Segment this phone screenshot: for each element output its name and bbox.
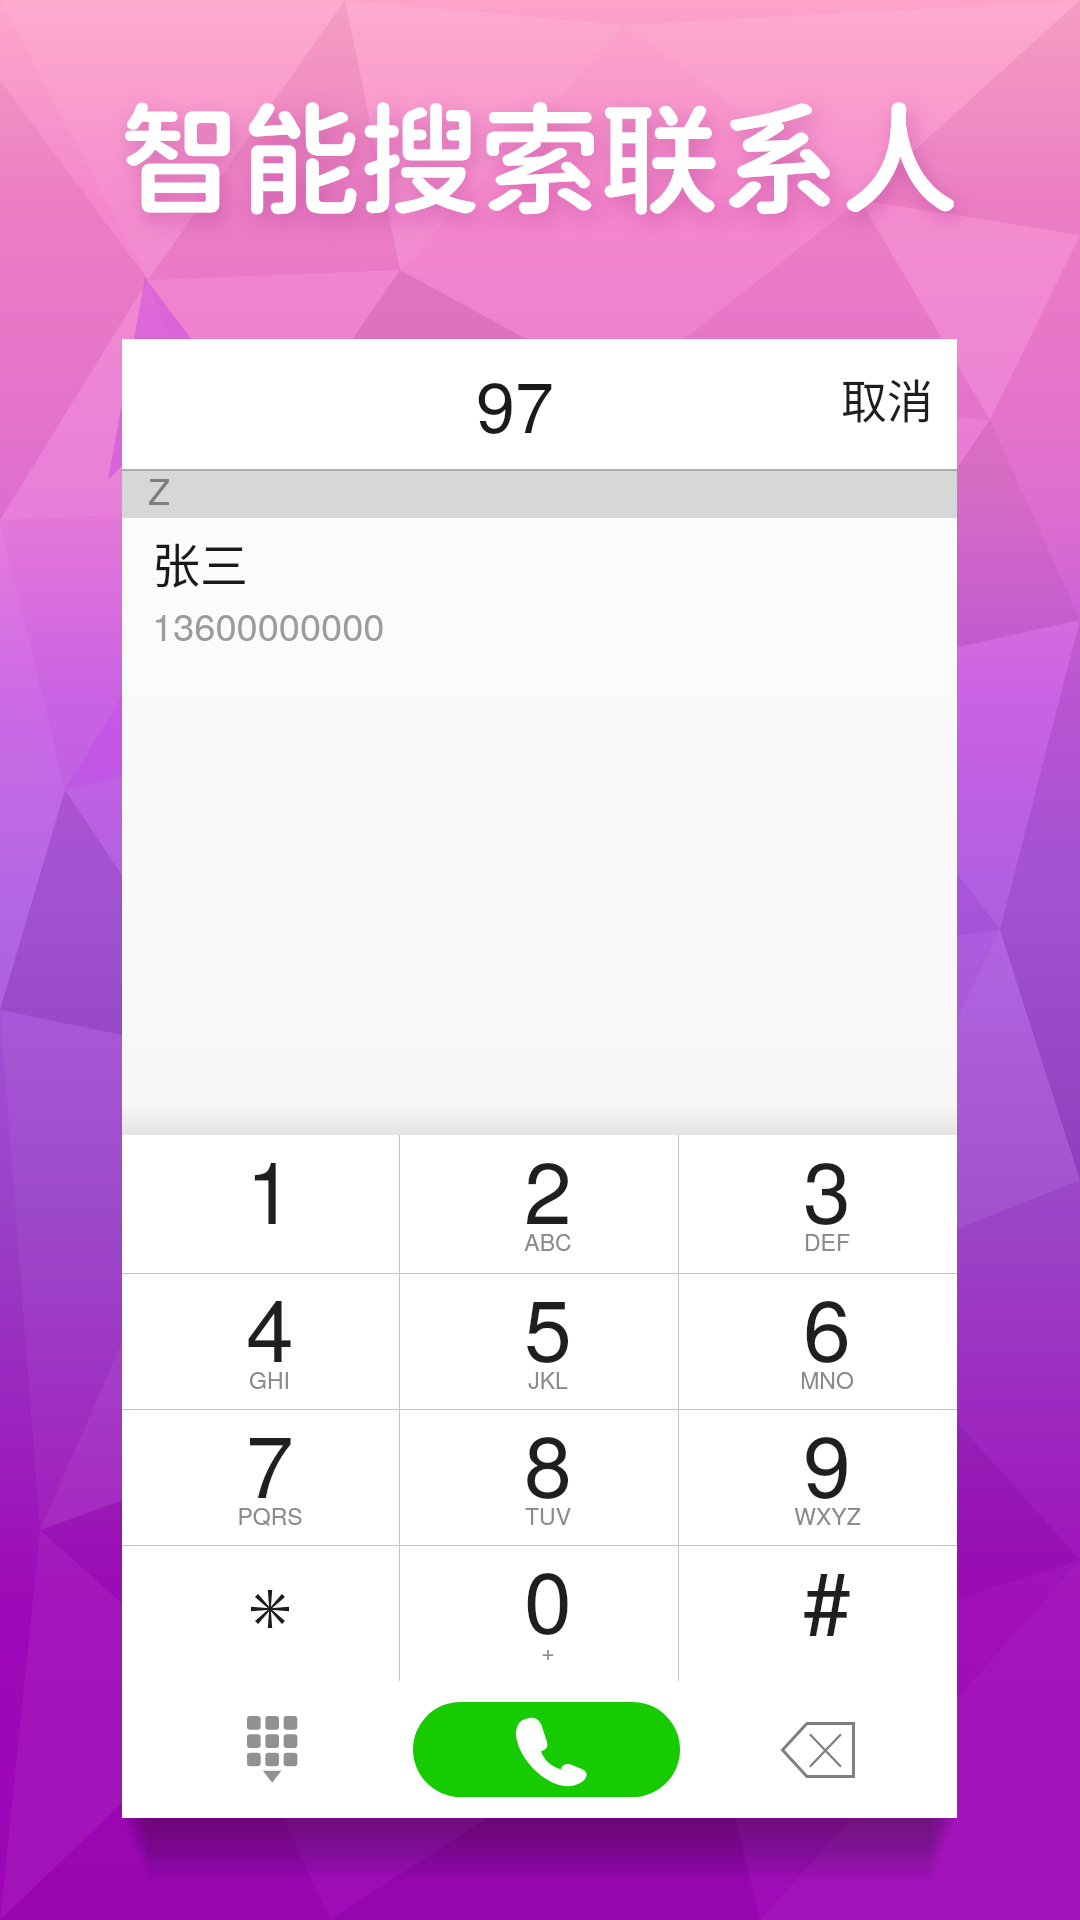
- staticText: GHI: [249, 1363, 290, 1396]
- staticText: 4: [246, 1263, 294, 1386]
- button[interactable]: Backspace: [679, 1681, 957, 1818]
- button[interactable]: 0: [400, 1545, 678, 1681]
- staticText: 1: [246, 1125, 294, 1248]
- staticText: Z: [148, 464, 170, 511]
- button[interactable]: 5: [400, 1273, 678, 1409]
- staticText: 2: [524, 1125, 572, 1248]
- staticText: WXYZ: [794, 1499, 861, 1532]
- button[interactable]: 4: [122, 1273, 399, 1409]
- staticText: 0: [524, 1535, 572, 1658]
- button[interactable]: 1: [122, 1135, 399, 1273]
- button[interactable]: 取消: [815, 339, 957, 469]
- button[interactable]: 7: [122, 1409, 399, 1545]
- button[interactable]: #: [679, 1545, 957, 1681]
- staticText: PQRS: [237, 1499, 303, 1532]
- staticText: 取消: [841, 365, 933, 432]
- button[interactable]: Call: [413, 1702, 680, 1797]
- staticText: ABC: [524, 1225, 572, 1258]
- staticText: +: [541, 1635, 555, 1668]
- staticText: TUV: [525, 1499, 571, 1532]
- staticText: 3: [803, 1125, 851, 1248]
- staticText: MNO: [800, 1363, 854, 1396]
- staticText: 13600000000: [152, 597, 385, 651]
- staticText: 97: [476, 353, 554, 453]
- staticText: 5: [524, 1263, 572, 1386]
- staticText: 6: [803, 1263, 851, 1386]
- staticText: 张三: [152, 527, 249, 597]
- staticText: #: [803, 1535, 851, 1658]
- staticText: 8: [524, 1399, 572, 1522]
- staticText: DEF: [804, 1225, 850, 1258]
- button[interactable]: 6: [679, 1273, 957, 1409]
- button[interactable]: 张三: [122, 518, 957, 678]
- staticText: 9: [803, 1399, 851, 1522]
- button[interactable]: 3: [679, 1135, 957, 1273]
- button[interactable]: 8: [400, 1409, 678, 1545]
- button[interactable]: 2: [400, 1135, 678, 1273]
- button[interactable]: 9: [679, 1409, 957, 1545]
- staticText: 智能搜索联系人: [120, 88, 960, 230]
- button[interactable]: Show keypad: [122, 1681, 401, 1818]
- staticText: 7: [246, 1399, 294, 1522]
- staticText: JKL: [528, 1363, 568, 1396]
- button[interactable]: [122, 1545, 399, 1681]
